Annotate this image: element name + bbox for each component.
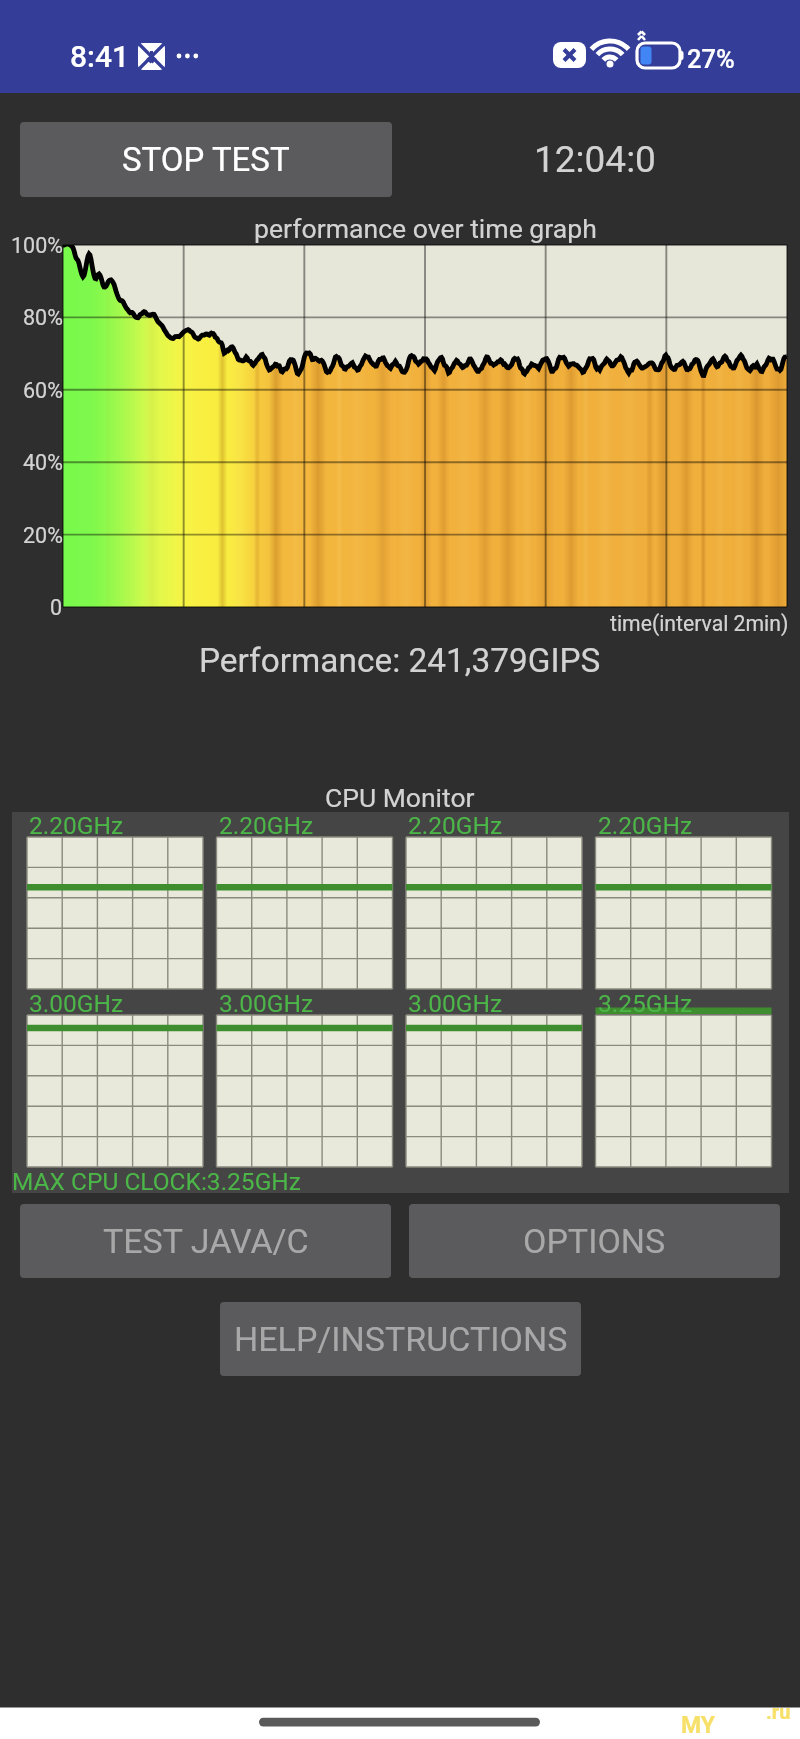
- staticText: HELP/INSTRUCTIONS: [234, 1319, 568, 1359]
- staticText: 2.20GHz: [29, 811, 124, 840]
- staticText: MY: [681, 1712, 716, 1739]
- staticText: 2.20GHz: [598, 811, 693, 840]
- staticText: 27%: [687, 44, 735, 74]
- staticText: time(interval 2min): [610, 611, 789, 636]
- staticText: performance over time graph: [254, 213, 597, 244]
- staticText: OPTIONS: [523, 1221, 666, 1261]
- staticText: 80%: [23, 305, 63, 330]
- staticText: 3.00GHz: [219, 989, 314, 1018]
- staticText: TEST JAVA/C: [103, 1221, 309, 1261]
- staticText: 100%: [11, 233, 63, 258]
- staticText: Performance: 241,379GIPS: [199, 641, 601, 680]
- staticText: 2.20GHz: [408, 811, 503, 840]
- button[interactable]: TEST JAVA/C: [20, 1204, 391, 1278]
- staticText: STOP TEST: [122, 140, 290, 179]
- staticText: 8:41: [70, 39, 130, 74]
- staticText: 3.00GHz: [29, 989, 124, 1018]
- staticText: 0: [50, 595, 63, 620]
- staticText: 3.00GHz: [408, 989, 503, 1018]
- button[interactable]: OPTIONS: [409, 1204, 780, 1278]
- staticText: 20%: [23, 523, 63, 548]
- staticText: MAX CPU CLOCK:3.25GHz: [12, 1167, 301, 1196]
- staticText: .ru: [766, 1700, 791, 1723]
- button[interactable]: HELP/INSTRUCTIONS: [220, 1302, 581, 1376]
- staticText: 60%: [23, 378, 63, 403]
- staticText: 12:04:0: [534, 138, 656, 181]
- staticText: 40%: [23, 450, 63, 475]
- staticText: CPU Monitor: [325, 782, 475, 813]
- button[interactable]: STOP TEST: [20, 122, 392, 197]
- staticText: 2.20GHz: [219, 811, 314, 840]
- staticText: 3.25GHz: [598, 989, 693, 1018]
